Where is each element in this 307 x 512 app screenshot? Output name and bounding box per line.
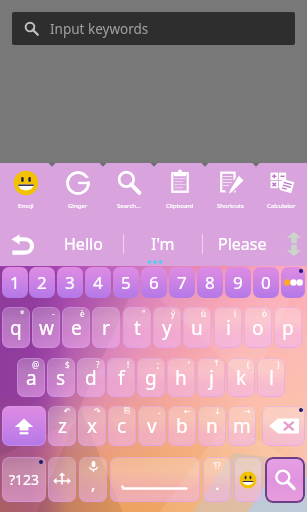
staticText: d — [85, 365, 97, 391]
button[interactable]: i — [214, 307, 242, 348]
staticText: s — [56, 365, 66, 391]
button[interactable]: Calculator — [256, 163, 307, 222]
staticText: y — [162, 315, 172, 341]
button[interactable]: 6 — [141, 267, 167, 298]
button[interactable]: Shortcuts — [205, 163, 256, 222]
button[interactable]: f — [107, 358, 135, 397]
button[interactable]: 9 — [225, 267, 251, 298]
staticText: I'm — [151, 233, 175, 255]
button[interactable]: j — [197, 358, 225, 397]
button[interactable]: More symbols — [281, 267, 305, 298]
staticText: - — [52, 308, 55, 319]
staticText: Shortcuts — [217, 202, 244, 210]
button[interactable]: Input keywords — [12, 12, 295, 45]
button[interactable]: e — [62, 307, 90, 348]
staticText: ⎘ — [124, 407, 131, 415]
button[interactable]: Clipboard — [154, 163, 205, 222]
staticText: " — [142, 308, 146, 319]
button[interactable]: Emoji — [234, 457, 262, 502]
staticText: ↷ — [94, 407, 101, 416]
button[interactable]: Search — [265, 457, 305, 503]
button[interactable]: v — [138, 406, 166, 446]
button[interactable]: l — [257, 358, 285, 397]
button[interactable]: Ginger — [52, 163, 103, 222]
staticText: ' — [188, 359, 190, 370]
button[interactable]: Hello — [44, 222, 123, 266]
button[interactable]: 7 — [169, 267, 195, 298]
staticText: 2 — [37, 271, 47, 294]
button[interactable]: t — [123, 307, 151, 348]
button[interactable]: z — [48, 406, 76, 446]
staticText: Emoji — [18, 202, 34, 210]
button[interactable]: Shift — [2, 406, 46, 446]
staticText: k — [236, 365, 247, 391]
button[interactable]: g — [137, 358, 165, 397]
button[interactable]: p — [274, 307, 302, 348]
button[interactable]: m — [228, 406, 256, 446]
staticText: l — [269, 365, 274, 391]
button[interactable]: Comma and voice input — [79, 457, 107, 502]
button[interactable]: w — [32, 307, 60, 348]
staticText: Search... — [117, 202, 141, 210]
staticText: Please — [218, 233, 267, 255]
button[interactable]: r — [92, 307, 120, 348]
button[interactable]: y — [153, 307, 181, 348]
button[interactable]: 2 — [29, 267, 55, 298]
staticText: Clipboard — [166, 202, 194, 210]
staticText: 7 — [177, 271, 187, 294]
button[interactable]: Switch layout — [48, 457, 76, 502]
button[interactable]: a — [17, 358, 45, 397]
staticText: h — [175, 365, 187, 391]
staticText: ( — [247, 359, 250, 370]
button[interactable]: c — [108, 406, 136, 446]
button[interactable]: o — [244, 307, 272, 348]
button[interactable]: Delete — [262, 406, 305, 446]
staticText: ← — [184, 407, 191, 416]
staticText: m — [233, 413, 251, 439]
button[interactable]: I'm — [124, 222, 202, 266]
button[interactable]: Symbols — [2, 457, 46, 502]
staticText: → — [244, 407, 251, 416]
button[interactable]: Expand suggestions — [281, 222, 307, 266]
staticText: , — [91, 472, 96, 495]
staticText: w — [39, 315, 54, 341]
button[interactable]: h — [167, 358, 195, 397]
staticText: ý — [171, 308, 176, 319]
staticText: ↶ — [64, 407, 71, 416]
staticText: j — [209, 365, 214, 391]
button[interactable]: b — [168, 406, 196, 446]
button[interactable]: Period — [203, 457, 231, 502]
staticText: 1 — [10, 271, 20, 294]
staticText: Input keywords — [50, 20, 149, 38]
staticText: ?123 — [9, 470, 40, 489]
button[interactable]: q — [2, 307, 30, 348]
staticText: g — [145, 365, 157, 391]
button[interactable]: 4 — [85, 267, 111, 298]
button[interactable]: Search... — [103, 163, 154, 222]
staticText: ↑ — [213, 359, 220, 368]
button[interactable]: x — [78, 406, 106, 446]
button[interactable]: u — [183, 307, 211, 348]
button[interactable]: k — [227, 358, 255, 397]
staticText: '!? — [213, 460, 221, 471]
button[interactable]: 5 — [113, 267, 139, 298]
button[interactable]: Undo — [0, 222, 44, 266]
button[interactable]: Please — [203, 222, 281, 266]
button[interactable]: 0 — [253, 267, 279, 298]
button[interactable]: s — [47, 358, 75, 397]
button[interactable]: Space — [110, 457, 200, 502]
staticText: ò — [262, 308, 267, 319]
staticText: p — [282, 315, 294, 341]
staticText: x — [87, 413, 98, 439]
staticText: q — [10, 315, 22, 341]
staticText: t — [134, 315, 141, 341]
button[interactable]: Emoji — [0, 163, 52, 222]
button[interactable]: n — [198, 406, 226, 446]
button[interactable]: 1 — [2, 267, 28, 298]
button[interactable]: 8 — [197, 267, 223, 298]
button[interactable]: 3 — [57, 267, 83, 298]
staticText: v — [147, 413, 157, 439]
button[interactable]: d — [77, 358, 105, 397]
staticText: ↓ — [214, 407, 221, 416]
staticText: ì — [234, 308, 237, 319]
